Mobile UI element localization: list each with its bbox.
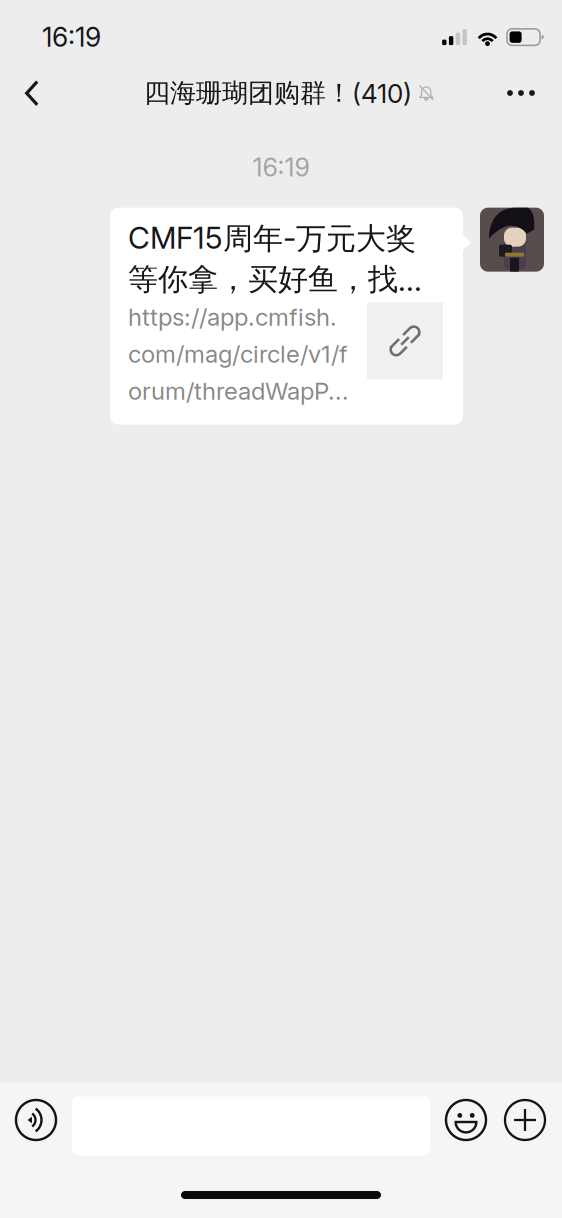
staticText: 16:19 (252, 152, 309, 183)
staticText: CMF15周年-万元大奖 (128, 220, 416, 258)
staticText: 16:19 (42, 21, 101, 53)
button[interactable]: More (502, 1082, 548, 1158)
button[interactable]: CMF15周年-万元大奖 (110, 208, 463, 425)
staticText: 等你拿，买好鱼，找... (128, 261, 422, 298)
staticText: com/mag/circle/v1/f (128, 339, 348, 368)
button[interactable]: Sender avatar (480, 208, 544, 272)
button[interactable]: Voice message (0, 1082, 72, 1158)
staticText: https://app.cmfish. (128, 302, 337, 331)
staticText: 四海珊瑚团购群！(410) (144, 77, 412, 109)
button[interactable]: More options (480, 62, 562, 124)
button[interactable]: Back (0, 62, 64, 124)
staticText: orum/threadWapP... (128, 376, 349, 405)
button[interactable]: Emoji (430, 1082, 502, 1158)
